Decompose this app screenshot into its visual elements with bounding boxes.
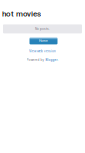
button[interactable]: View web version	[0, 49, 85, 53]
button[interactable]: Home	[29, 37, 57, 44]
staticText: Blogger.	[45, 58, 58, 62]
staticText: Home	[39, 39, 48, 43]
staticText: No posts.	[35, 27, 50, 31]
staticText: Powered by	[26, 58, 44, 62]
staticText: View web version	[29, 49, 56, 53]
staticText: hot movies	[2, 9, 41, 18]
button[interactable]: Blogger.	[45, 58, 58, 62]
